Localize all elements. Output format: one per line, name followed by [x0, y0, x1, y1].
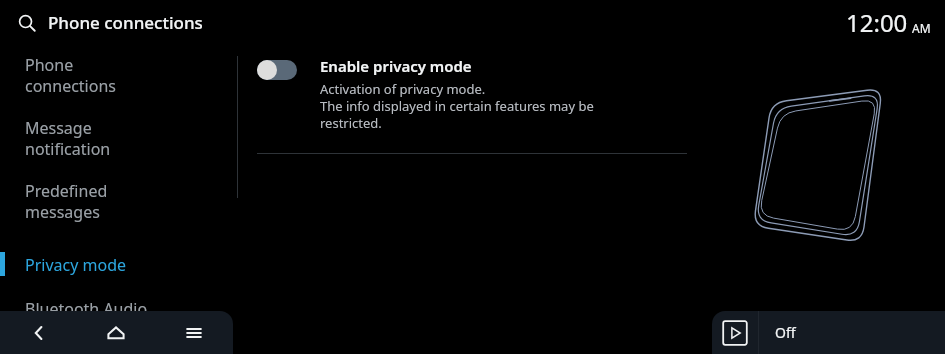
button[interactable]: Menu [155, 311, 233, 354]
button[interactable]: Play [712, 311, 945, 354]
staticText: Message notification [25, 117, 111, 160]
staticText: Phone connections [25, 54, 116, 97]
staticText: Off [775, 323, 796, 342]
staticText: Bluetooth Audio [25, 298, 148, 320]
staticText: Activation of privacy mode. The info dis… [320, 80, 594, 132]
button[interactable]: Search [0, 7, 215, 38]
other: Play [722, 320, 748, 346]
button[interactable]: Home [77, 311, 155, 354]
staticText: Predefined messages [25, 180, 108, 223]
button[interactable]: Message notification [0, 115, 237, 161]
staticText: Enable privacy mode [320, 56, 472, 76]
other: Search [18, 14, 36, 32]
staticText: 12:00 [846, 6, 908, 39]
button[interactable]: Back [0, 311, 77, 354]
staticText: Privacy mode [25, 254, 127, 276]
button[interactable]: Enable privacy mode toggle [257, 56, 297, 80]
button[interactable]: Privacy mode [0, 242, 237, 288]
button[interactable]: Bluetooth Audio [0, 286, 237, 332]
staticText: Phone connections [48, 11, 203, 34]
button[interactable]: Predefined messages [0, 178, 237, 224]
staticText: AM [912, 20, 931, 36]
button[interactable]: Phone connections [0, 52, 237, 98]
